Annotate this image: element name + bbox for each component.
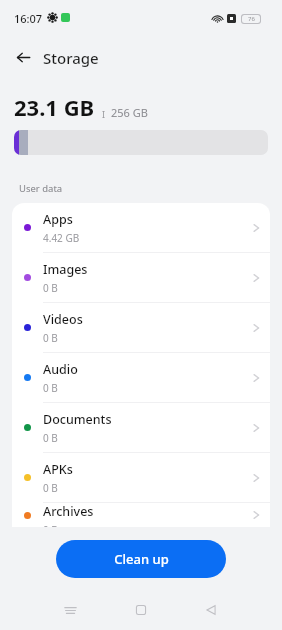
staticText: 0 B — [43, 281, 58, 295]
staticText: 23.1 GB — [14, 92, 95, 122]
button[interactable]: Audio — [12, 353, 270, 402]
staticText: Audio — [43, 361, 78, 378]
button[interactable]: Back — [195, 594, 227, 626]
staticText: 0 B — [43, 523, 58, 527]
staticText: 0 B — [43, 431, 58, 445]
staticText: 76 — [248, 15, 255, 23]
staticText: Archives — [43, 503, 94, 520]
staticText: APKs — [43, 461, 73, 478]
button[interactable]: Back — [8, 42, 38, 72]
button[interactable]: Videos — [12, 303, 270, 352]
button[interactable]: Archives — [12, 503, 270, 527]
staticText: Images — [43, 261, 88, 278]
staticText: Storage — [43, 48, 99, 68]
staticText: 0 B — [43, 331, 58, 345]
button[interactable]: Images — [12, 253, 270, 302]
staticText: 4.42 GB — [43, 231, 80, 245]
staticText: 16:07 — [14, 11, 43, 26]
staticText: User data — [19, 182, 63, 195]
staticText: 0 B — [43, 381, 58, 395]
button[interactable]: Documents — [12, 403, 270, 452]
staticText: 0 B — [43, 481, 58, 495]
staticText: Clean up — [114, 550, 169, 568]
staticText: Apps — [43, 211, 73, 228]
staticText: Documents — [43, 411, 112, 428]
button[interactable]: Clean up — [56, 540, 226, 578]
staticText: Videos — [43, 311, 83, 328]
staticText: I — [102, 108, 106, 120]
staticText: 256 GB — [111, 105, 148, 120]
button[interactable]: Recents — [54, 594, 86, 626]
button[interactable]: Apps — [12, 203, 270, 252]
button[interactable]: APKs — [12, 453, 270, 502]
button[interactable]: Home — [125, 594, 157, 626]
